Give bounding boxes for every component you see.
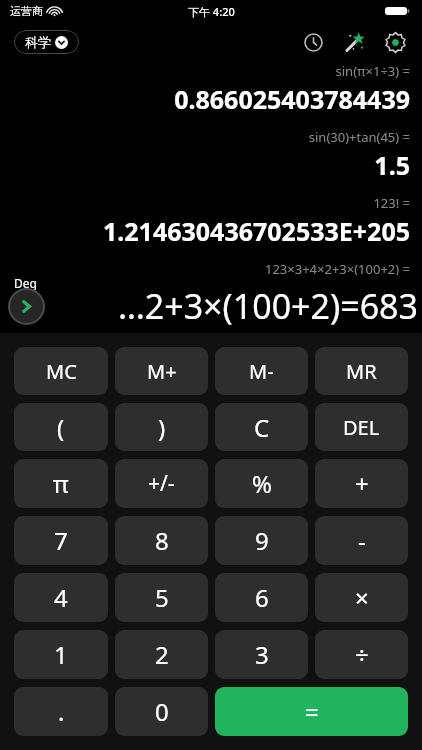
staticText: 1 — [54, 638, 68, 671]
staticText: ) — [158, 411, 166, 444]
staticText: 123! = — [373, 194, 410, 212]
button[interactable]: Settings — [380, 27, 410, 57]
button[interactable]: +/- — [115, 459, 208, 508]
button[interactable]: 3 — [215, 630, 308, 679]
button[interactable]: 科学 — [14, 30, 79, 54]
staticText: 科学 — [25, 34, 51, 50]
staticText: - — [358, 524, 366, 557]
staticText: % — [252, 467, 272, 500]
button[interactable]: 123! = — [0, 194, 410, 248]
staticText: 4 — [54, 581, 68, 614]
staticText: 3 — [255, 638, 269, 671]
staticText: sin(30)+tan(45) = — [308, 128, 410, 146]
button[interactable]: History — [298, 27, 328, 57]
button[interactable]: 4 — [14, 573, 108, 622]
button[interactable]: Magic — [339, 27, 369, 57]
button[interactable]: 5 — [115, 573, 208, 622]
staticText: 下午 4:20 — [188, 4, 235, 19]
button[interactable]: 2 — [115, 630, 208, 679]
button[interactable]: + — [315, 459, 408, 508]
button[interactable]: = — [215, 687, 408, 736]
staticText: 7 — [54, 524, 68, 557]
button[interactable]: 9 — [215, 516, 308, 565]
button[interactable]: MC — [14, 347, 108, 395]
staticText: C — [254, 411, 270, 444]
button[interactable]: . — [14, 687, 108, 736]
button[interactable]: C — [215, 403, 308, 451]
button[interactable]: ) — [115, 403, 208, 451]
button[interactable]: ÷ — [315, 630, 408, 679]
button[interactable]: MR — [315, 347, 408, 395]
staticText: MC — [46, 358, 77, 385]
staticText: 0 — [155, 695, 169, 728]
staticText: …2+3×(100+2)=683 — [45, 283, 418, 329]
staticText: 9 — [255, 524, 269, 557]
button[interactable]: 1 — [14, 630, 108, 679]
staticText: + — [355, 467, 369, 500]
staticText: sin(π×1÷3) = — [335, 62, 410, 80]
button[interactable]: × — [315, 573, 408, 622]
staticText: 0.866025403784439 — [174, 82, 410, 116]
staticText: ÷ — [355, 638, 369, 671]
button[interactable]: sin(π×1÷3) = — [0, 62, 410, 116]
staticText: 8 — [155, 524, 169, 557]
staticText: MR — [346, 358, 377, 385]
staticText: M- — [249, 358, 274, 385]
staticText: 6 — [255, 581, 269, 614]
button[interactable]: Expand — [8, 288, 45, 325]
staticText: +/- — [148, 469, 175, 498]
staticText: = — [305, 695, 319, 728]
button[interactable]: M+ — [115, 347, 208, 395]
staticText: DEL — [343, 414, 380, 441]
staticText: M+ — [147, 358, 177, 385]
button[interactable]: 123×3+4×2+3×(100+2) = — [0, 260, 410, 275]
button[interactable]: 6 — [215, 573, 308, 622]
button[interactable]: ( — [14, 403, 108, 451]
staticText: 1.214630436702533E+205 — [102, 214, 410, 248]
button[interactable]: M- — [215, 347, 308, 395]
staticText: π — [53, 467, 69, 500]
button[interactable]: π — [14, 459, 108, 508]
staticText: 运营商 — [10, 4, 43, 18]
staticText: × — [355, 581, 369, 614]
button[interactable]: DEL — [315, 403, 408, 451]
staticText: 2 — [155, 638, 169, 671]
staticText: 5 — [155, 581, 169, 614]
staticText: 1.5 — [374, 148, 410, 182]
button[interactable]: % — [215, 459, 308, 508]
staticText: 123×3+4×2+3×(100+2) = — [264, 260, 410, 275]
button[interactable]: 7 — [14, 516, 108, 565]
button[interactable]: 0 — [115, 687, 208, 736]
button[interactable]: - — [315, 516, 408, 565]
staticText: ( — [57, 411, 65, 444]
button[interactable]: 8 — [115, 516, 208, 565]
staticText: Deg — [14, 275, 37, 291]
staticText: . — [58, 695, 65, 728]
button[interactable]: sin(30)+tan(45) = — [0, 128, 410, 182]
